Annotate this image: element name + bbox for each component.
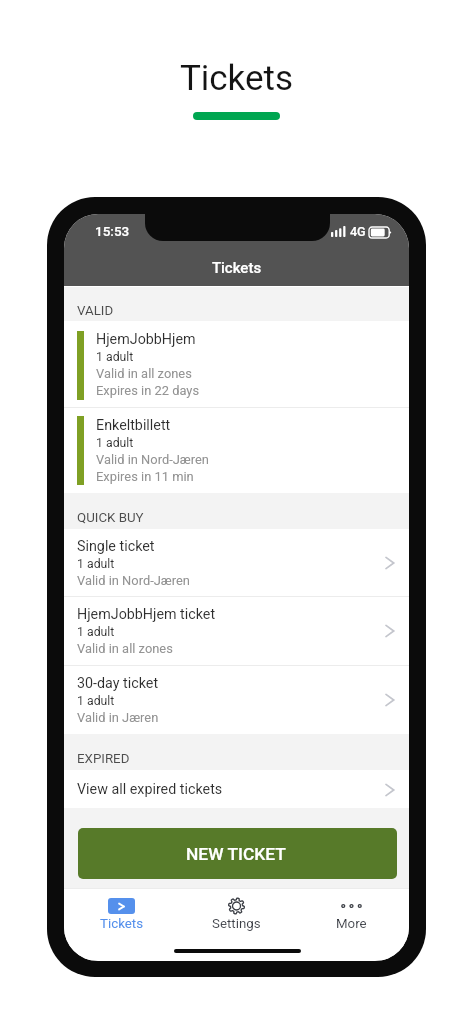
staticText: Settings — [212, 916, 261, 932]
staticText: View all expired tickets — [77, 781, 223, 798]
staticText: Enkeltbillett — [96, 417, 171, 434]
button[interactable] — [64, 321, 409, 407]
button[interactable]: Settings — [179, 897, 294, 945]
staticText: More — [336, 916, 367, 932]
staticText: Valid in all zones — [77, 641, 173, 656]
staticText: 1 adult — [96, 436, 134, 450]
button[interactable]: More — [294, 897, 409, 945]
staticText: NEW TICKET — [186, 844, 286, 864]
staticText: Valid in Nord-Jæren — [96, 452, 209, 467]
button[interactable] — [64, 771, 409, 808]
staticText: Valid in Nord-Jæren — [77, 573, 190, 588]
staticText: Valid in Jæren — [77, 710, 159, 725]
staticText: Tickets — [64, 259, 409, 277]
staticText: Single ticket — [77, 538, 155, 555]
staticText: Valid in all zones — [96, 366, 192, 381]
button[interactable] — [64, 408, 409, 492]
staticText: VALID — [77, 303, 114, 319]
staticText: 1 adult — [77, 694, 115, 708]
staticText: HjemJobbHjem ticket — [77, 606, 216, 623]
staticText: Expires in 22 days — [96, 383, 200, 398]
staticText: Tickets — [100, 916, 144, 932]
staticText: HjemJobbHjem — [96, 331, 196, 348]
button[interactable]: NEW TICKET — [78, 828, 397, 879]
button[interactable] — [64, 666, 409, 734]
button[interactable]: Tickets — [64, 897, 179, 945]
staticText: 1 adult — [77, 625, 115, 639]
staticText: 1 adult — [77, 557, 115, 571]
button[interactable] — [64, 597, 409, 665]
staticText: QUICK BUY — [77, 510, 144, 526]
staticText: EXPIRED — [77, 751, 130, 767]
staticText: 4G — [350, 224, 366, 239]
staticText: Expires in 11 min — [96, 469, 194, 484]
staticText: 30-day ticket — [77, 675, 159, 692]
staticText: 15:53 — [95, 223, 130, 239]
button[interactable] — [64, 529, 409, 596]
staticText: Tickets — [0, 58, 473, 99]
staticText: 1 adult — [96, 350, 134, 364]
